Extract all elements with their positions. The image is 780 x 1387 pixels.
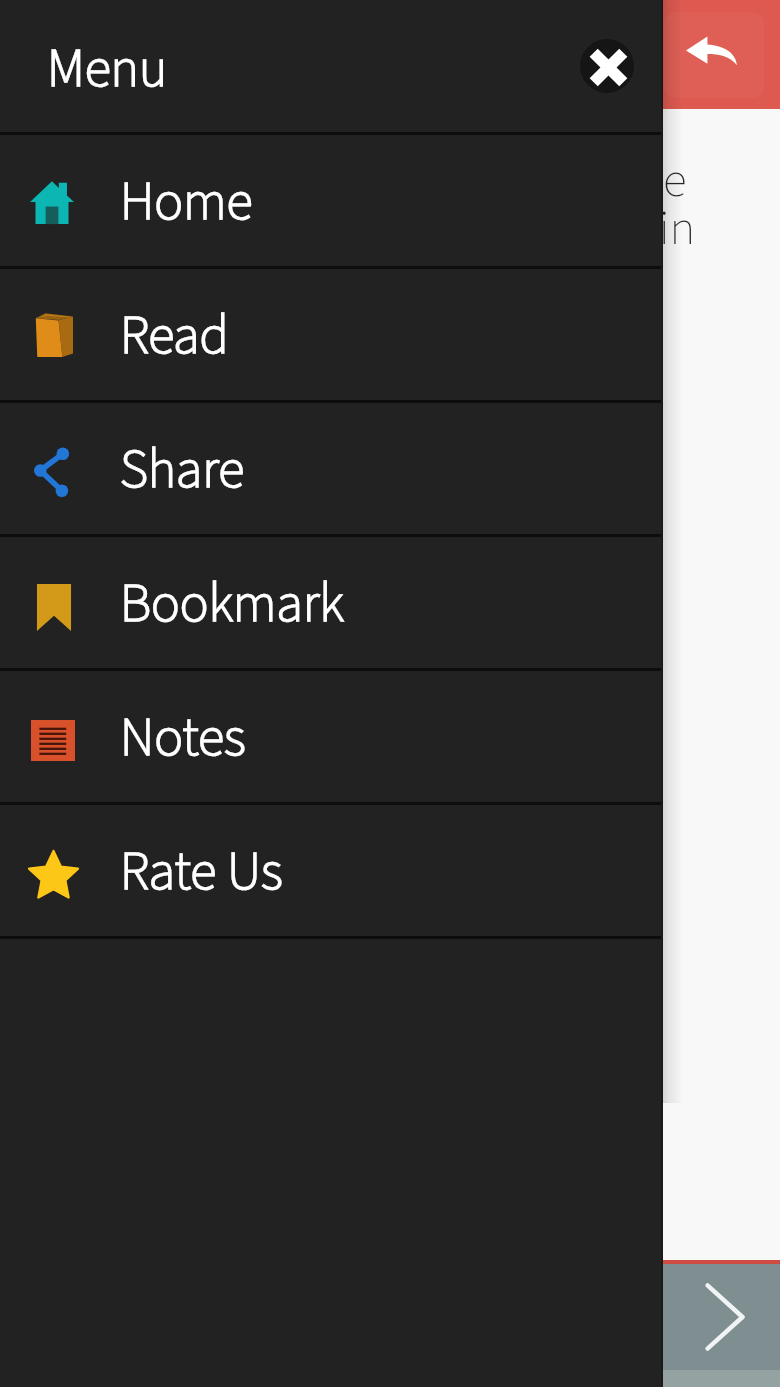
staticText: Notes <box>120 700 246 777</box>
button[interactable]: Close <box>580 39 634 93</box>
button[interactable]: Notes <box>0 671 661 802</box>
button[interactable]: Back <box>664 12 764 98</box>
button[interactable]: Rate Us <box>0 805 661 936</box>
staticText: Share <box>120 432 245 509</box>
staticText: The quick brown fox jume <box>184 146 687 216</box>
staticText: Menu <box>47 31 168 108</box>
staticText: Read <box>120 298 229 375</box>
button[interactable]: Bookmark <box>0 537 661 668</box>
staticText: the lazy dog sleeping in <box>240 194 696 264</box>
button[interactable]: Read <box>0 269 661 400</box>
staticText: Bookmark <box>120 566 344 643</box>
button[interactable]: Share <box>0 403 661 534</box>
staticText: Home <box>120 164 253 241</box>
button[interactable]: Home <box>0 135 661 266</box>
button[interactable]: Next page <box>686 1264 762 1370</box>
staticText: Rate Us <box>120 834 283 911</box>
